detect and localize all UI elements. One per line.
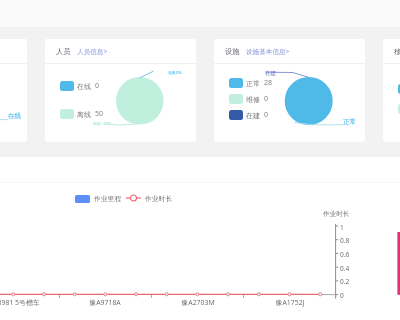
staticText: 离线	[77, 110, 91, 119]
staticText: 50	[95, 109, 104, 119]
staticText: 0	[340, 291, 344, 300]
staticText: 维修	[246, 95, 260, 104]
staticText: 作业时长	[323, 210, 350, 218]
staticText: 1	[340, 223, 344, 232]
staticText: 正常	[246, 79, 260, 88]
staticText: 0	[264, 94, 269, 104]
button[interactable]: 人员	[56, 39, 196, 63]
staticText: 0.6	[340, 250, 350, 259]
staticText: 28	[264, 78, 273, 88]
staticText: 作业时长	[145, 194, 173, 203]
staticText: 正常	[343, 118, 357, 126]
staticText: 移动	[394, 47, 400, 56]
button[interactable]: 移动	[394, 39, 400, 63]
staticText: 0	[264, 110, 269, 120]
button[interactable]: 作业里程	[75, 194, 122, 203]
staticText: 设施	[225, 47, 240, 56]
staticText: 0.8	[340, 236, 350, 245]
staticText: 在建	[265, 70, 277, 77]
staticText: 豫A9718A	[75, 298, 135, 307]
staticText: 设施基本信息>	[246, 47, 290, 56]
staticText: 人员	[56, 47, 71, 56]
staticText: 0	[95, 81, 100, 91]
staticText: 在线	[8, 112, 22, 120]
staticText: 豫A8981 5号槽车	[0, 298, 43, 307]
staticText: 豫A1752J	[260, 298, 320, 307]
staticText: 在建	[246, 111, 260, 120]
staticText: 人员信息>	[77, 47, 108, 56]
staticText: 离线 100%	[93, 121, 112, 126]
staticText: 作业里程	[94, 194, 122, 203]
staticText: 在线	[77, 82, 91, 91]
staticText: 0.4	[340, 264, 350, 273]
staticText: 0.2	[340, 277, 350, 286]
staticText: 在线 0%	[168, 70, 182, 75]
button[interactable]: 设施	[225, 39, 365, 63]
staticText: 豫A2703M	[168, 298, 228, 307]
